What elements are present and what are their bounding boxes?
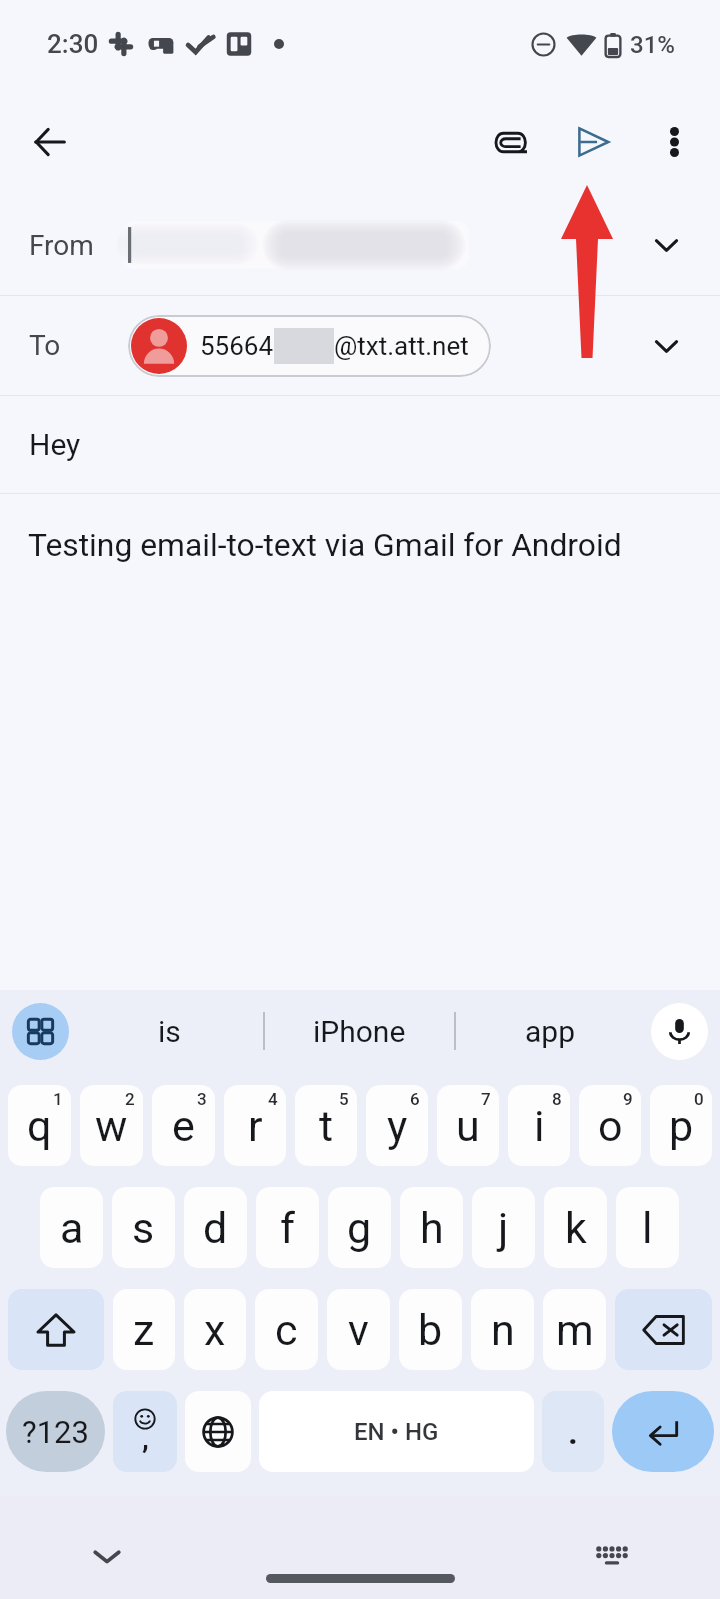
staticText: app [525,1014,576,1049]
staticText: 55664 [200,331,274,361]
button[interactable]: q [8,1085,71,1166]
button[interactable]: Switch keyboard [584,1528,640,1584]
staticText: f [280,1203,295,1253]
button[interactable]: 55664 [128,315,491,377]
button[interactable]: app [456,990,645,1072]
button[interactable]: Attach file [477,108,545,176]
staticText: q [27,1101,52,1151]
staticText: iPhone [313,1014,406,1049]
button[interactable]: Backspace [615,1289,712,1370]
staticText: g [347,1203,372,1253]
button[interactable]: v [327,1289,390,1370]
button[interactable]: Shift [8,1289,104,1370]
button[interactable]: c [255,1289,318,1370]
button[interactable]: p [650,1085,712,1166]
button[interactable]: s [112,1187,175,1268]
staticText: 7 [481,1089,491,1109]
staticText: j [498,1203,509,1253]
staticText: v [348,1305,369,1355]
button[interactable]: w [80,1085,143,1166]
staticText: b [418,1305,443,1355]
button[interactable]: Keyboard toolbar [12,1003,69,1060]
button[interactable]: x [184,1289,246,1370]
staticText: u [456,1101,480,1151]
staticText: n [491,1305,515,1355]
button[interactable]: Testing email-to-text via Gmail for Andr… [0,494,720,594]
button[interactable]: ?123 [6,1391,105,1472]
button[interactable]: u [437,1085,499,1166]
staticText: Testing email-to-text via Gmail for Andr… [28,526,622,563]
staticText: EN • HG [354,1418,439,1446]
button[interactable]: is [75,990,263,1072]
staticText: y [387,1101,408,1151]
staticText: k [565,1203,587,1253]
button[interactable]: Expand recipients [638,318,694,374]
button[interactable]: l [616,1187,679,1268]
button[interactable]: b [399,1289,462,1370]
button[interactable]: a [40,1187,103,1268]
button[interactable]: y [366,1085,428,1166]
staticText: 2 [125,1089,135,1109]
staticText: 9 [623,1089,633,1109]
staticText: 2:30 [47,29,99,59]
button[interactable]: Voice input [651,1003,708,1060]
staticText: t [319,1101,334,1151]
staticText: 8 [552,1089,562,1109]
staticText: w [95,1101,128,1151]
button[interactable]: t [295,1085,357,1166]
staticText: r [248,1101,263,1151]
staticText: c [275,1305,298,1355]
button[interactable]: h [400,1187,463,1268]
staticText: h [420,1203,444,1253]
button[interactable]: . [542,1391,604,1472]
staticText: 0 [694,1089,704,1109]
staticText: 6 [410,1089,420,1109]
staticText: 1 [53,1089,63,1109]
staticText: l [642,1203,653,1253]
staticText: s [132,1203,155,1253]
staticText: . [568,1412,578,1452]
staticText: i [534,1101,545,1151]
staticText: o [598,1101,623,1151]
button[interactable]: More options [640,108,708,176]
staticText: e [172,1101,195,1151]
staticText: m [556,1305,594,1355]
staticText: Hey [29,427,81,462]
staticText: 5 [339,1089,349,1109]
button[interactable]: j [472,1187,535,1268]
staticText: 4 [268,1089,278,1109]
button[interactable]: r [224,1085,286,1166]
staticText: z [133,1305,155,1355]
staticText: 3 [197,1089,207,1109]
staticText: @txt.att.net [334,331,469,361]
button[interactable]: z [113,1289,175,1370]
button[interactable]: d [184,1187,247,1268]
button[interactable]: Back [16,108,84,176]
staticText: From [29,229,94,262]
button[interactable]: Enter [612,1391,714,1472]
button[interactable]: f [256,1187,319,1268]
button[interactable]: o [579,1085,641,1166]
button[interactable]: Send [559,108,627,176]
button[interactable]: iPhone [265,990,454,1072]
staticText: d [203,1203,228,1253]
button[interactable]: Hide keyboard [79,1528,135,1584]
button[interactable]: EN • HG [259,1391,534,1472]
staticText: is [158,1014,181,1049]
button[interactable]: m [543,1289,606,1370]
staticText: ?123 [22,1414,89,1450]
button[interactable]: n [471,1289,534,1370]
button[interactable]: Expand from field [638,217,694,273]
button[interactable]: g [328,1187,391,1268]
button[interactable]: Hey [0,396,720,493]
button[interactable]: Emoji [113,1391,177,1472]
button[interactable]: e [152,1085,215,1166]
staticText: 31% [630,31,675,59]
staticText: a [60,1203,84,1253]
button[interactable]: k [544,1187,607,1268]
staticText: p [669,1101,694,1151]
staticText: To [29,329,61,362]
staticText: x [204,1305,226,1355]
button[interactable]: Change language [185,1391,251,1472]
button[interactable]: i [508,1085,570,1166]
